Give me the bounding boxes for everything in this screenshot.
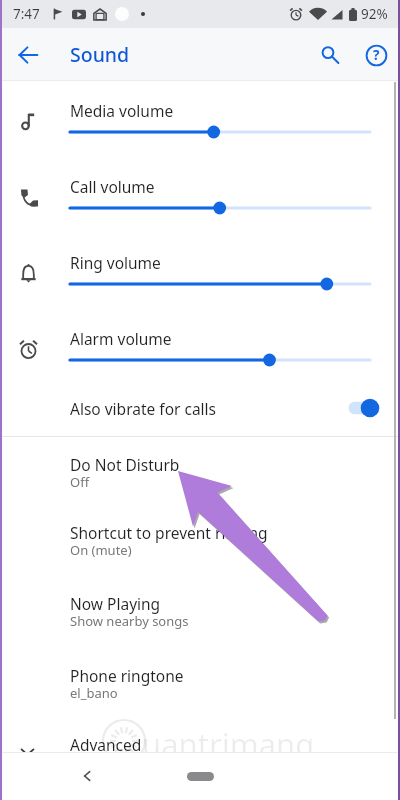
staticText: Do Not Disturb xyxy=(70,454,180,475)
button[interactable]: Do Not Disturb xyxy=(0,452,400,514)
button[interactable]: Help xyxy=(356,35,396,75)
staticText: uantrimang xyxy=(142,723,315,765)
staticText: Sound xyxy=(70,41,130,68)
button[interactable]: Phone ringtone xyxy=(0,663,400,725)
button[interactable]: Search xyxy=(310,35,350,75)
staticText: 92% xyxy=(361,5,388,23)
staticText: Also vibrate for calls xyxy=(70,398,216,419)
staticText: Call volume xyxy=(70,176,155,197)
button[interactable]: Now Playing xyxy=(0,591,400,653)
staticText: On (mute) xyxy=(70,541,132,559)
staticText: el_bano xyxy=(70,684,118,702)
staticText: Ring volume xyxy=(70,252,161,273)
staticText: Now Playing xyxy=(70,593,161,614)
staticText: Shortcut to prevent ringing xyxy=(70,522,268,543)
button[interactable]: Ring volume xyxy=(0,233,400,309)
button[interactable]: Advanced xyxy=(0,730,400,752)
staticText: Advanced xyxy=(70,734,142,755)
staticText: Off xyxy=(70,473,90,491)
button[interactable]: Call volume xyxy=(0,157,400,233)
staticText: 7:47 xyxy=(13,5,40,23)
button[interactable]: Alarm volume xyxy=(0,309,400,385)
staticText: Phone ringtone xyxy=(70,665,184,686)
staticText: Media volume xyxy=(70,100,174,121)
button[interactable]: Back xyxy=(8,35,48,75)
button[interactable]: Shortcut to prevent ringing xyxy=(0,520,400,582)
staticText: Show nearby songs xyxy=(70,612,189,630)
button[interactable]: Back xyxy=(67,756,107,796)
staticText: ? xyxy=(373,46,380,64)
staticText: Alarm volume xyxy=(70,328,172,349)
button[interactable]: Also vibrate for calls xyxy=(0,382,400,434)
button[interactable]: Media volume xyxy=(0,81,400,157)
button[interactable]: Home xyxy=(170,761,230,791)
